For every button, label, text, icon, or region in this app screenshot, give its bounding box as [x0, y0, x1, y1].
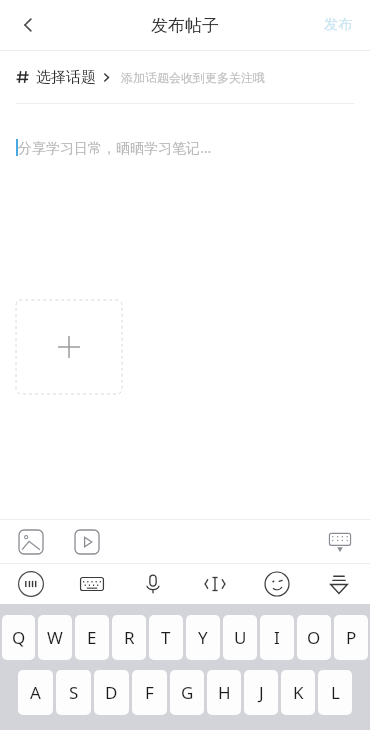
button[interactable]: Emoji — [246, 564, 308, 604]
staticText: O — [307, 626, 321, 649]
staticText: S — [69, 681, 79, 704]
button[interactable]: K — [281, 670, 315, 715]
staticText: U — [234, 626, 247, 649]
button[interactable]: Keyboard — [61, 564, 122, 604]
staticText: H — [218, 681, 231, 704]
staticText: J — [259, 681, 264, 704]
button[interactable]: Hide keyboard — [324, 526, 356, 558]
button[interactable]: J — [244, 670, 278, 715]
staticText: R — [124, 626, 135, 649]
staticText: D — [105, 681, 118, 704]
button[interactable]: W — [38, 615, 72, 660]
button[interactable]: Collapse — [308, 564, 370, 604]
staticText: W — [47, 626, 63, 649]
button[interactable]: Voice input — [122, 564, 184, 604]
button[interactable]: O — [297, 615, 331, 660]
button[interactable]: Input method — [0, 564, 61, 604]
staticText: Y — [198, 626, 208, 649]
button[interactable]: Add video — [72, 527, 102, 557]
staticText: 添加话题会收到更多关注哦 — [121, 70, 265, 85]
button[interactable]: U — [223, 615, 257, 660]
button[interactable]: G — [170, 670, 204, 715]
button[interactable]: Move cursor — [184, 564, 246, 604]
staticText: 发布 — [324, 16, 352, 34]
staticText: 发布帖子 — [151, 15, 219, 36]
staticText: Q — [12, 626, 26, 649]
staticText: P — [346, 626, 357, 649]
staticText: A — [30, 681, 41, 704]
button[interactable]: A — [18, 670, 53, 715]
button[interactable]: Add image — [16, 300, 122, 394]
staticText: E — [87, 626, 97, 649]
button[interactable]: Add photo — [16, 527, 46, 557]
staticText: L — [331, 681, 340, 704]
staticText: F — [145, 681, 154, 704]
staticText: I — [274, 626, 280, 649]
button[interactable]: H — [207, 670, 241, 715]
button[interactable]: R — [112, 615, 146, 660]
staticText: K — [293, 681, 304, 704]
button[interactable]: Y — [186, 615, 220, 660]
button[interactable]: F — [132, 670, 167, 715]
staticText: 分享学习日常，晒晒学习笔记... — [18, 138, 212, 157]
staticText: 选择话题 — [36, 68, 96, 87]
staticText: G — [181, 681, 194, 704]
button[interactable]: Q — [2, 615, 35, 660]
button[interactable]: Back — [8, 5, 48, 45]
button[interactable]: T — [149, 615, 183, 660]
button[interactable]: D — [94, 670, 129, 715]
button[interactable]: I — [260, 615, 294, 660]
button[interactable]: E — [75, 615, 109, 660]
button[interactable]: L — [318, 670, 352, 715]
staticText: T — [161, 626, 171, 649]
button[interactable]: P — [334, 615, 368, 660]
button[interactable]: 选择话题 — [0, 51, 370, 103]
button[interactable]: 发布 — [316, 10, 360, 40]
button[interactable]: S — [56, 670, 91, 715]
